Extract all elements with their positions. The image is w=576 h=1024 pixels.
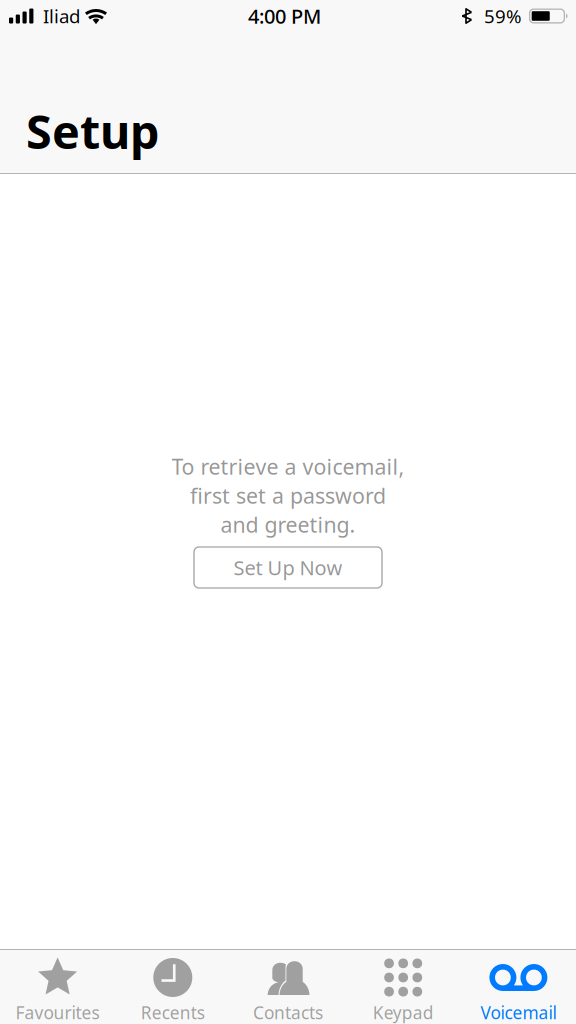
staticText: Setup [26, 100, 159, 162]
staticText: and greeting. [220, 510, 355, 539]
button[interactable]: Voicemail [461, 949, 576, 1024]
button[interactable]: Contacts [230, 949, 346, 1024]
staticText: Keypad [373, 1001, 434, 1024]
button[interactable]: Favourites [0, 949, 115, 1024]
staticText: first set a password [190, 481, 386, 510]
staticText: Contacts [253, 1001, 323, 1024]
button[interactable]: Recents [115, 949, 230, 1024]
staticText: Iliad [43, 4, 80, 28]
button[interactable]: Keypad [346, 949, 461, 1024]
staticText: Recents [141, 1001, 205, 1024]
staticText: 4:00 PM [248, 3, 321, 29]
button[interactable]: Set Up Now [194, 547, 382, 588]
staticText: Set Up Now [233, 554, 342, 581]
staticText: Favourites [16, 1001, 100, 1024]
staticText: Voicemail [480, 1001, 556, 1024]
staticText: To retrieve a voicemail, [171, 452, 404, 481]
staticText: 59% [484, 4, 522, 28]
